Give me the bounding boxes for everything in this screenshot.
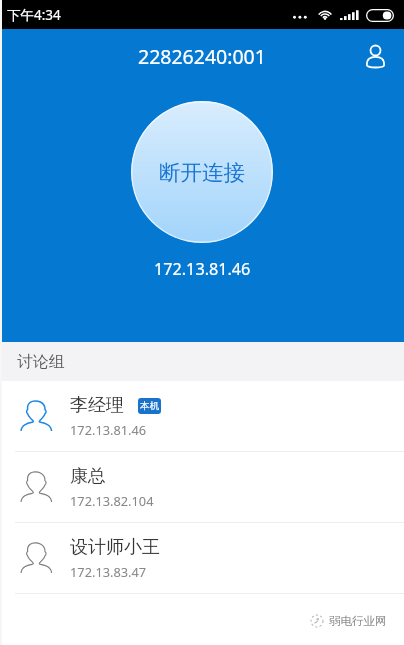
staticText: 康总: [70, 465, 106, 488]
staticText: 弱电行业网: [329, 614, 387, 628]
staticText: 李经理: [70, 394, 124, 417]
staticText: 断开连接: [159, 159, 245, 186]
staticText: 172.13.82.104: [70, 492, 154, 509]
staticText: 22826240:001: [138, 43, 266, 70]
staticText: 172.13.83.47: [70, 563, 147, 580]
button[interactable]: Account: [364, 37, 398, 71]
staticText: 172.13.81.46: [70, 421, 147, 438]
button[interactable]: 康总: [0, 452, 404, 522]
staticText: 设计师小王: [70, 536, 160, 559]
staticText: 本机: [140, 400, 159, 412]
button[interactable]: 断开连接: [131, 101, 273, 243]
button[interactable]: 设计师小王: [0, 523, 404, 593]
staticText: 下午4:34: [7, 6, 61, 24]
staticText: 172.13.81.46: [154, 258, 251, 280]
staticText: 讨论组: [17, 352, 65, 372]
button[interactable]: 李经理: [0, 381, 404, 451]
